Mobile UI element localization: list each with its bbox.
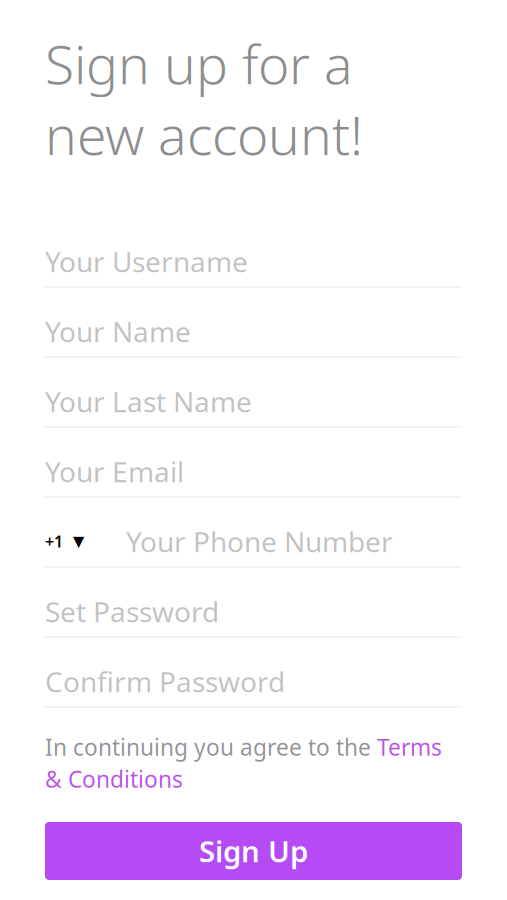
staticText: Sign Up <box>199 831 308 870</box>
staticText: Your Username <box>45 243 248 280</box>
staticText: Terms <box>377 732 442 762</box>
staticText: Sign up for a <box>45 28 353 99</box>
button[interactable]: Sign Up <box>45 822 462 880</box>
staticText: Your Phone Number <box>126 523 393 560</box>
button[interactable]: Select country code <box>45 531 84 552</box>
staticText: Your Last Name <box>45 383 252 420</box>
staticText: & Conditions <box>45 764 183 794</box>
staticText: In continuing you agree to the <box>45 732 377 762</box>
button[interactable]: Terms <box>377 732 442 762</box>
staticText: +1 <box>45 531 63 552</box>
staticText: Confirm Password <box>45 663 285 700</box>
staticText: Your Name <box>45 313 191 350</box>
staticText: Your Email <box>45 453 184 490</box>
staticText: ▼ <box>73 533 84 550</box>
staticText: Set Password <box>45 593 219 630</box>
button[interactable]: & Conditions <box>45 764 183 794</box>
staticText: new account! <box>45 99 363 170</box>
